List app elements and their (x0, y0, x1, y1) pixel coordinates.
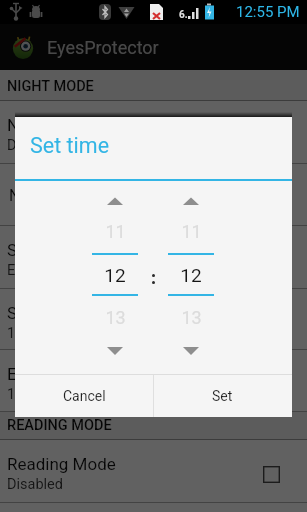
button[interactable]: Decrease (178, 342, 204, 362)
staticText: EyesProtector (47, 37, 159, 58)
staticText: Night Mode Schedule (9, 186, 162, 205)
button[interactable]: Cancel (15, 375, 153, 417)
staticText: Night Mode (7, 115, 96, 135)
button[interactable]: Start time (0, 226, 307, 289)
staticText: Set (212, 388, 233, 404)
button[interactable]: Decrease (102, 342, 128, 362)
button[interactable]: Increase (102, 191, 128, 211)
staticText: 1 hour (7, 325, 48, 342)
staticText: Disabled (7, 476, 63, 493)
staticText: Start time (7, 240, 82, 260)
staticText: Extra dim (7, 364, 79, 384)
button[interactable]: Increase (178, 191, 204, 211)
button[interactable]: Reading Mode (0, 440, 307, 503)
staticText: 11 (105, 221, 126, 242)
button[interactable]: Toggle reading mode (263, 466, 280, 483)
staticText: Set time (30, 133, 110, 158)
staticText: 6. (179, 9, 188, 21)
staticText: 11 (181, 221, 202, 242)
staticText: NIGHT MODE (7, 78, 94, 95)
staticText: 13 (105, 307, 126, 328)
button[interactable]: Extra dim (0, 350, 307, 412)
button[interactable]: Stop time (0, 289, 307, 350)
staticText: 12 (180, 264, 202, 286)
button[interactable]: Night Mode Schedule (0, 164, 307, 226)
staticText: READING MODE (7, 417, 112, 434)
staticText: Stop time (7, 303, 80, 323)
staticText: 13 (181, 307, 202, 328)
staticText: Reading Mode (7, 454, 116, 474)
button[interactable]: Night Mode (0, 101, 307, 164)
staticText: 12 (104, 264, 126, 286)
staticText: Cancel (63, 388, 106, 404)
staticText: Every day at 21:00 (7, 262, 124, 279)
staticText: 12:55 PM (236, 3, 300, 21)
button[interactable]: Set (153, 375, 292, 417)
staticText: Disabled (7, 137, 63, 154)
button[interactable]: EyesProtector (0, 24, 307, 70)
staticText: 10 % (7, 386, 38, 403)
